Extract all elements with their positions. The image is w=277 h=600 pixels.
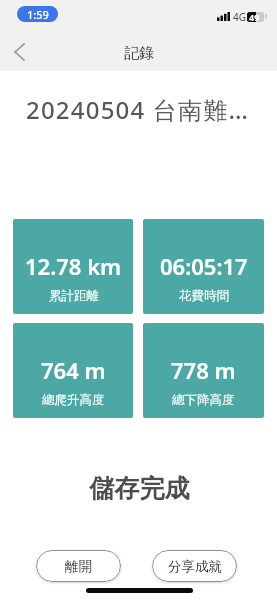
button[interactable]: Back [5, 38, 33, 66]
staticText: 778 m [171, 355, 236, 385]
staticText: 4G [233, 10, 246, 24]
staticText: 花費時間 [179, 288, 229, 304]
staticText: 764 m [41, 355, 106, 385]
button[interactable]: 778 m [143, 323, 264, 418]
staticText: 06:05:17 [160, 251, 248, 281]
staticText: 49 [249, 11, 260, 21]
button[interactable]: 分享成就 [152, 550, 237, 582]
staticText: 記錄 [124, 44, 154, 63]
button[interactable]: 764 m [13, 323, 133, 418]
button[interactable]: 12.78 km [13, 219, 133, 314]
staticText: 儲存完成 [1, 473, 277, 504]
staticText: 總爬升高度 [42, 392, 105, 408]
staticText: 總下降高度 [172, 392, 235, 408]
staticText: 累計距離 [49, 288, 99, 304]
staticText: 20240504 台南難… [26, 93, 250, 126]
button[interactable]: 06:05:17 [143, 219, 264, 314]
staticText: 1:59 [27, 7, 49, 22]
button[interactable]: 離開 [36, 550, 121, 582]
staticText: 分享成就 [168, 558, 222, 575]
staticText: 離開 [65, 558, 92, 575]
staticText: 12.78 km [25, 251, 122, 281]
